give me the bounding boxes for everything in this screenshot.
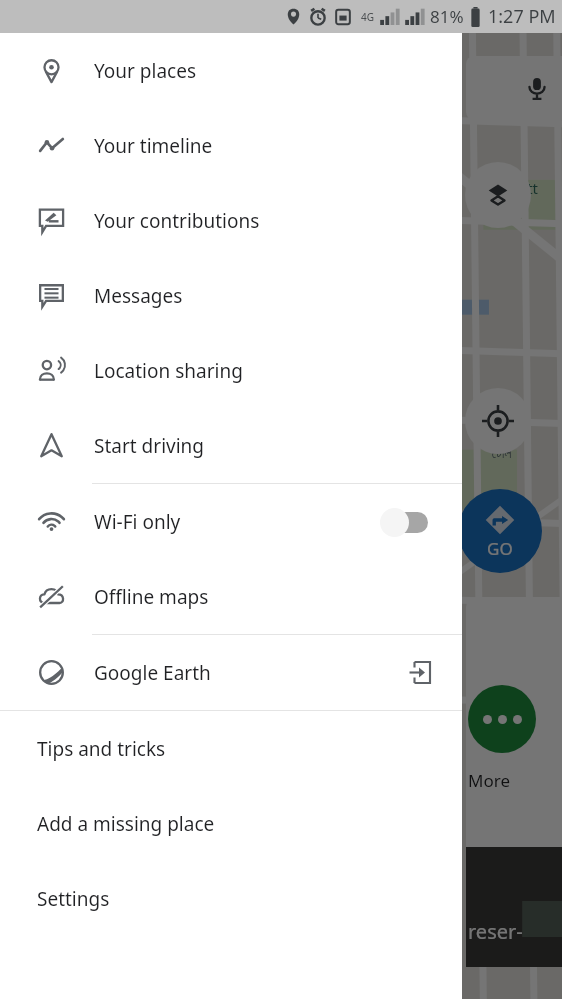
button[interactable]: Start driving [0, 408, 462, 483]
staticText: GO [487, 537, 513, 560]
button[interactable]: Your timeline [0, 108, 462, 183]
staticText: Wi-Fi only [94, 509, 181, 535]
staticText: 1:27 PM [488, 4, 556, 29]
staticText: More [468, 769, 510, 792]
staticText: Offline maps [94, 584, 209, 610]
button[interactable]: Location sharing [0, 333, 462, 408]
staticText: Settings [37, 886, 110, 912]
staticText: reser- [468, 918, 523, 945]
staticText: Start driving [94, 433, 205, 459]
staticText: Add a missing place [37, 811, 215, 837]
staticText: Google Earth [94, 660, 211, 686]
button[interactable]: Map layers [465, 162, 531, 228]
button[interactable]: Settings [0, 861, 462, 936]
button[interactable]: Offline maps [0, 559, 462, 634]
other: Open Google Earth [407, 660, 432, 685]
staticText: টোল [492, 447, 512, 461]
button[interactable]: More [468, 685, 536, 753]
staticText: Tips and tricks [37, 736, 166, 762]
staticText: Your contributions [94, 208, 260, 234]
button[interactable]: Messages [0, 258, 462, 333]
staticText: Your places [94, 58, 197, 84]
button[interactable]: Search [466, 56, 562, 120]
button[interactable]: Your contributions [0, 183, 462, 258]
staticText: 4G [361, 10, 374, 24]
staticText: 81% [430, 5, 464, 28]
button[interactable]: Add a missing place [0, 786, 462, 861]
staticText: Your timeline [94, 133, 213, 159]
button[interactable]: Wi-Fi only [0, 484, 462, 559]
button[interactable]: GO [458, 489, 542, 573]
button[interactable]: My location [465, 388, 531, 454]
staticText: Chatt [500, 178, 538, 198]
staticText: Messages [94, 283, 183, 309]
button[interactable]: Google Earth [0, 635, 462, 710]
staticText: Location sharing [94, 358, 243, 384]
button[interactable]: Tips and tricks [0, 711, 462, 786]
button[interactable]: Your places [0, 33, 462, 108]
